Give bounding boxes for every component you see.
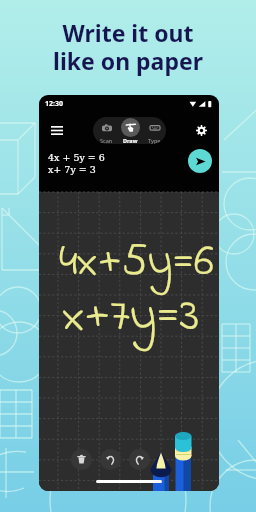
- button[interactable]: Undo: [100, 449, 121, 470]
- button[interactable]: Type: [142, 117, 166, 144]
- button[interactable]: Delete: [71, 449, 92, 470]
- button[interactable]: Send: [188, 149, 212, 173]
- staticText: x+ 7y = 3: [48, 164, 96, 175]
- button[interactable]: Menu: [46, 119, 68, 141]
- button[interactable]: Scan: [94, 117, 118, 144]
- staticText: Type: [148, 137, 161, 144]
- button[interactable]: Draw: [118, 117, 142, 144]
- staticText: Scan: [100, 137, 113, 144]
- staticText: 4x + 5y = 6: [48, 152, 105, 163]
- staticText: Draw: [123, 137, 138, 144]
- button[interactable]: Redo: [129, 449, 150, 470]
- staticText: 12:30: [45, 99, 63, 109]
- staticText: x+7y=3: [63, 282, 200, 352]
- button[interactable]: Settings: [191, 120, 211, 140]
- staticText: 4x+5y=6: [59, 230, 214, 296]
- staticText: Write it out like on paper: [53, 17, 203, 77]
